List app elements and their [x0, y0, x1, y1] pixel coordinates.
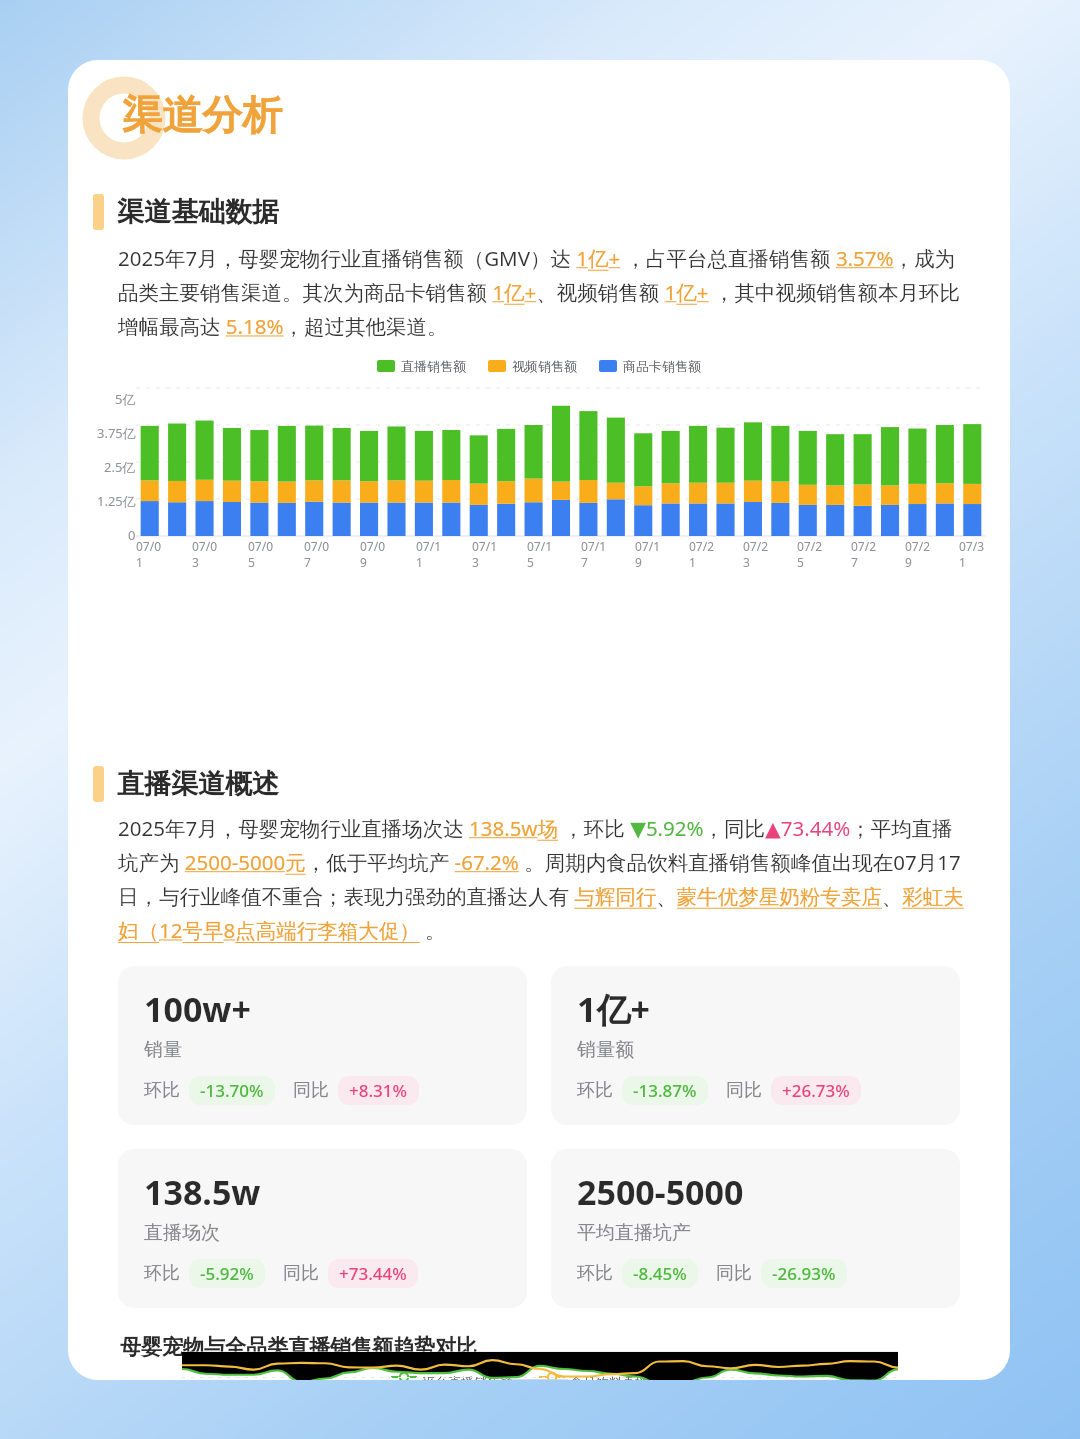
staticText: -13.87% [633, 1079, 697, 1102]
staticText: 销量 [144, 1038, 182, 1062]
staticText: 同比 [283, 1262, 319, 1285]
staticText: 07/23 [743, 538, 770, 570]
staticText: 07/19 [635, 538, 662, 570]
staticText: -13.70% [200, 1079, 264, 1102]
staticText: 07/31 [959, 538, 986, 570]
staticText: 07/17 [581, 538, 608, 570]
staticText: 07/15 [527, 538, 554, 570]
staticText: 07/25 [797, 538, 824, 570]
staticText: 100w+ [144, 986, 251, 1032]
staticText: +26.73% [782, 1079, 850, 1102]
staticText: -26.93% [772, 1262, 836, 1285]
staticText: 07/13 [472, 538, 500, 570]
staticText: 07/07 [304, 538, 332, 570]
staticText: 商品卡销售额 [623, 358, 701, 374]
staticText: 07/03 [192, 538, 220, 570]
button[interactable]: 2500-5000 [551, 1149, 960, 1308]
button[interactable]: 直播渠道概述 [93, 766, 1010, 802]
staticText: 07/05 [248, 538, 276, 570]
staticText: -5.92% [200, 1262, 254, 1285]
staticText: 食品饮料直播销售额 [570, 1374, 687, 1380]
staticText: 同比 [726, 1079, 762, 1102]
staticText: 2025年7月，母婴宠物行业直播场次达 138.5w场 ，环比 ▼5.92%，同… [118, 814, 970, 944]
staticText: 渠道分析 [122, 90, 282, 140]
staticText: -8.45% [633, 1262, 687, 1285]
staticText: 2500-5000 [577, 1169, 744, 1215]
staticText: 1亿+ [577, 986, 650, 1032]
button[interactable]: 1亿+ [551, 966, 960, 1125]
staticText: 07/21 [689, 538, 716, 570]
staticText: 直播销售额 [401, 358, 466, 374]
staticText: 视频销售额 [512, 358, 577, 374]
staticText: 0 [128, 526, 136, 544]
staticText: 2.5亿 [104, 458, 136, 476]
staticText: 138.5w [144, 1169, 261, 1215]
staticText: 07/11 [416, 538, 444, 570]
staticText: +73.44% [339, 1262, 407, 1285]
staticText: 07/09 [360, 538, 388, 570]
staticText: 3.75亿 [97, 424, 136, 442]
staticText: 1.25亿 [97, 492, 136, 510]
button[interactable]: 138.5w [118, 1149, 527, 1308]
staticText: 07/27 [851, 538, 878, 570]
staticText: 同比 [293, 1079, 329, 1102]
staticText: 环比 [577, 1079, 613, 1102]
staticText: 环比 [577, 1262, 613, 1285]
staticText: 渠道基础数据 [117, 195, 279, 229]
staticText: 直播渠道概述 [117, 767, 279, 801]
staticText: 5亿 [115, 390, 136, 408]
staticText: 直播场次 [144, 1221, 220, 1245]
staticText: 环比 [144, 1079, 180, 1102]
staticText: 平台直播销售额 [422, 1374, 513, 1380]
button[interactable]: 100w+ [118, 966, 527, 1125]
staticText: +8.31% [349, 1079, 408, 1102]
staticText: 07/01 [136, 538, 164, 570]
staticText: 环比 [144, 1262, 180, 1285]
staticText: 销量额 [577, 1038, 634, 1062]
staticText: 07/29 [905, 538, 932, 570]
staticText: 母婴宠物与全品类直播销售额趋势对比 [120, 1334, 477, 1360]
staticText: 平均直播坑产 [577, 1221, 691, 1245]
staticText: 同比 [716, 1262, 752, 1285]
button[interactable]: 渠道基础数据 [93, 194, 1010, 230]
staticText: 2025年7月，母婴宠物行业直播销售额（GMV）达 1亿+ ，占平台总直播销售额… [118, 244, 970, 340]
